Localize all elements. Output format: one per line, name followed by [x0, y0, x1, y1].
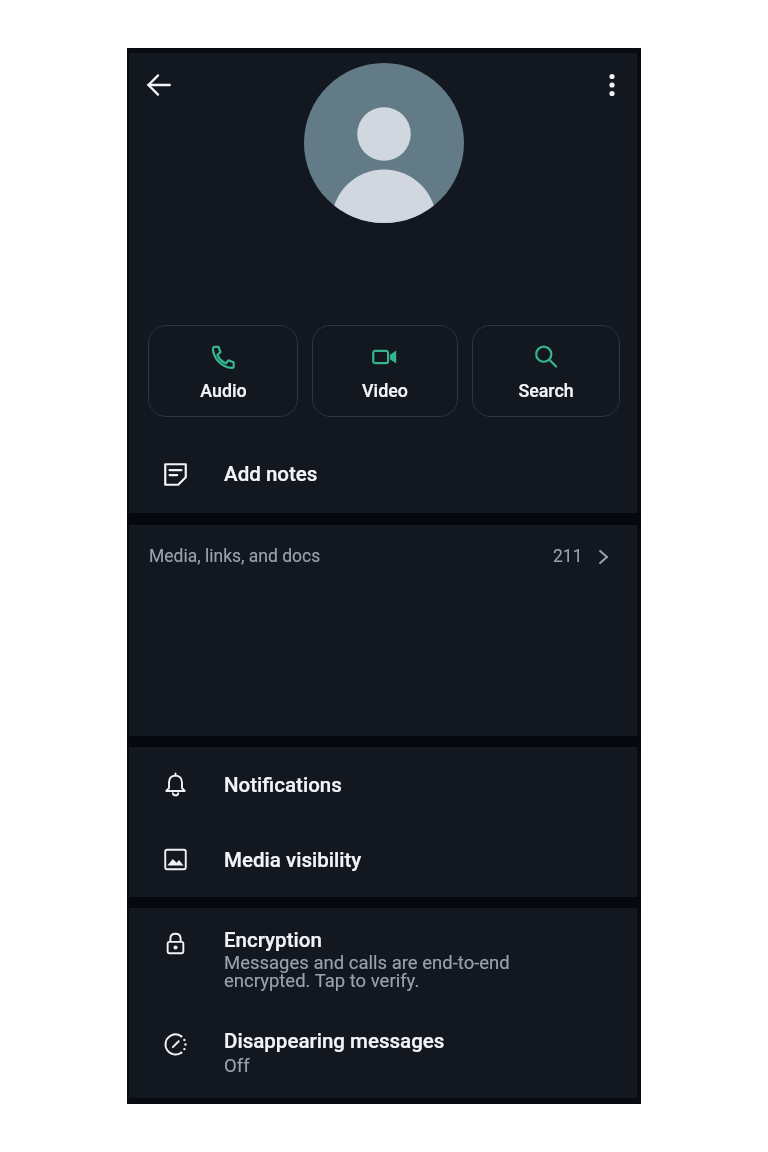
button[interactable]: Profile photo	[304, 63, 464, 223]
staticText: Off	[224, 1055, 250, 1077]
staticText: Media, links, and docs	[149, 546, 321, 567]
staticText: Add notes	[224, 462, 318, 486]
button[interactable]: Media visibility	[127, 828, 641, 895]
staticText: Encryption	[224, 928, 322, 952]
button[interactable]: Add notes	[127, 447, 641, 513]
staticText: Disappearing messages	[224, 1029, 445, 1053]
staticText: Search	[518, 380, 574, 401]
button[interactable]: Encryption	[127, 915, 641, 1000]
button[interactable]: Search	[472, 325, 620, 417]
button[interactable]: Media, links, and docs	[127, 529, 641, 587]
button[interactable]: Video	[312, 325, 458, 417]
staticText: Video	[362, 380, 408, 401]
button[interactable]: Back	[135, 61, 183, 109]
button[interactable]: More options	[588, 61, 636, 109]
staticText: Messages and calls are end-to-end encryp…	[224, 952, 510, 991]
staticText: Media visibility	[224, 848, 362, 872]
staticText: 211	[553, 546, 583, 567]
button[interactable]: Notifications	[127, 755, 641, 822]
button[interactable]: Disappearing messages	[127, 1018, 641, 1085]
staticText: Audio	[200, 380, 247, 401]
button[interactable]: Audio	[148, 325, 298, 417]
staticText: Notifications	[224, 773, 342, 797]
